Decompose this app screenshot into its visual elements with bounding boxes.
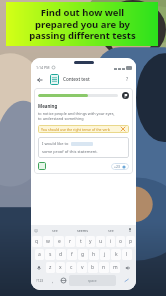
- button[interactable]: Enter: [118, 275, 135, 286]
- button[interactable]: c: [66, 262, 76, 273]
- button[interactable]: u: [96, 236, 105, 247]
- button[interactable]: k: [111, 249, 121, 260]
- staticText: space: [88, 279, 97, 283]
- button[interactable]: m: [110, 262, 120, 273]
- staticText: ,: [52, 278, 54, 284]
- button[interactable]: z: [46, 262, 55, 273]
- staticText: b: [91, 264, 95, 271]
- staticText: g: [81, 251, 85, 258]
- staticText: 1:14 PM: [36, 65, 50, 70]
- button[interactable]: Back: [35, 75, 44, 84]
- staticText: q: [35, 238, 39, 245]
- staticText: x: [59, 264, 62, 271]
- button[interactable]: l: [122, 249, 132, 260]
- staticText: i: [110, 238, 112, 245]
- staticText: Meaning: [38, 103, 58, 109]
- button[interactable]: seems: [77, 228, 89, 233]
- staticText: p: [129, 238, 133, 245]
- staticText: k: [115, 251, 118, 258]
- button[interactable]: b: [88, 262, 98, 273]
- button[interactable]: Flag: [122, 92, 129, 99]
- button[interactable]: Help: [123, 75, 132, 84]
- button[interactable]: q: [32, 236, 42, 247]
- staticText: e: [58, 238, 61, 245]
- staticText: some proof of this statement.: [42, 149, 98, 154]
- staticText: +23: [114, 164, 120, 169]
- staticText: s: [49, 251, 52, 258]
- button[interactable]: Language: [59, 275, 67, 286]
- button[interactable]: n: [99, 262, 109, 273]
- button[interactable]: w: [43, 236, 53, 247]
- staticText: l: [126, 251, 128, 258]
- staticText: n: [102, 264, 106, 271]
- staticText: f: [71, 251, 73, 258]
- staticText: z: [49, 264, 52, 271]
- staticText: o: [119, 238, 123, 245]
- staticText: v: [81, 264, 84, 271]
- button[interactable]: see: [108, 228, 114, 233]
- button[interactable]: Emoji: [34, 228, 39, 233]
- button[interactable]: x: [56, 262, 65, 273]
- button[interactable]: j: [100, 249, 110, 260]
- staticText: Context test: [63, 76, 90, 82]
- staticText: Find out how well prepared you are by pa…: [29, 6, 136, 42]
- button[interactable]: Dismiss: [120, 126, 126, 132]
- staticText: t: [80, 238, 82, 245]
- button[interactable]: Shift: [32, 262, 45, 273]
- staticText: ☺: [34, 228, 39, 233]
- button[interactable]: p: [126, 236, 135, 247]
- staticText: d: [59, 251, 63, 258]
- staticText: r: [69, 238, 72, 245]
- button[interactable]: r: [65, 236, 75, 247]
- button[interactable]: h: [89, 249, 99, 260]
- button[interactable]: v: [77, 262, 87, 273]
- button[interactable]: Dictionary: [38, 162, 46, 170]
- button[interactable]: t: [76, 236, 85, 247]
- button[interactable]: ?123: [32, 275, 47, 286]
- button[interactable]: +23: [111, 163, 129, 170]
- staticText: ?123: [36, 278, 44, 283]
- button[interactable]: f: [67, 249, 77, 260]
- staticText: j: [104, 251, 106, 258]
- button[interactable]: see: [52, 228, 58, 233]
- button[interactable]: s: [45, 249, 55, 260]
- staticText: I would like to: [42, 141, 69, 146]
- staticText: a: [38, 251, 41, 258]
- button[interactable]: y: [86, 236, 95, 247]
- staticText: u: [99, 238, 103, 245]
- button[interactable]: Backspace: [121, 262, 135, 273]
- button[interactable]: g: [78, 249, 88, 260]
- staticText: c: [70, 264, 73, 271]
- staticText: to notice people and things with your ey…: [38, 111, 115, 121]
- button[interactable]: i: [106, 236, 115, 247]
- button[interactable]: d: [56, 249, 66, 260]
- button[interactable]: o: [116, 236, 125, 247]
- staticText: h: [92, 251, 96, 258]
- button[interactable]: Emoji: [49, 275, 57, 286]
- staticText: w: [46, 238, 50, 245]
- button[interactable]: Voice input: [127, 227, 133, 233]
- button[interactable]: a: [35, 249, 44, 260]
- button[interactable]: e: [54, 236, 64, 247]
- staticText: ?: [126, 76, 129, 83]
- staticText: y: [89, 238, 92, 245]
- staticText: m: [113, 264, 118, 271]
- staticText: You should use the right tense of the ve…: [41, 127, 110, 132]
- button[interactable]: space: [69, 275, 116, 286]
